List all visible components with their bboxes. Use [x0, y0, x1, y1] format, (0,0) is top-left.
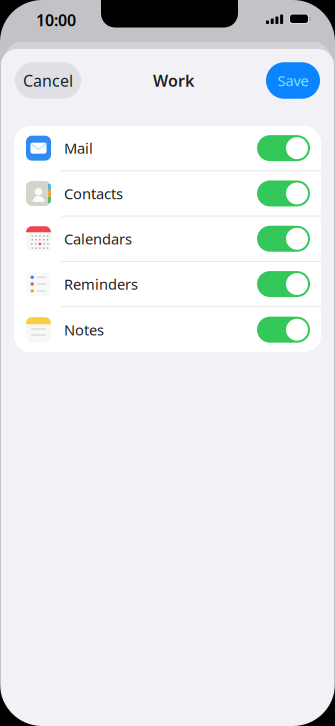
button[interactable]: Contacts — [14, 171, 321, 217]
staticText: Cancel — [23, 70, 73, 91]
button[interactable]: Save — [266, 62, 320, 99]
staticText: 10:00 — [36, 9, 76, 31]
button[interactable]: Notes — [14, 307, 321, 352]
staticText: Work — [153, 70, 194, 91]
button[interactable]: Calendars — [14, 217, 321, 262]
staticText: Mail — [64, 138, 93, 158]
button[interactable]: Mail — [14, 126, 321, 171]
staticText: Save — [277, 71, 308, 90]
staticText: Contacts — [64, 184, 123, 203]
button[interactable]: Cancel — [15, 62, 81, 99]
staticText: Notes — [64, 320, 104, 339]
button[interactable]: Reminders — [14, 262, 321, 307]
staticText: Calendars — [64, 229, 132, 248]
staticText: Reminders — [64, 274, 138, 294]
